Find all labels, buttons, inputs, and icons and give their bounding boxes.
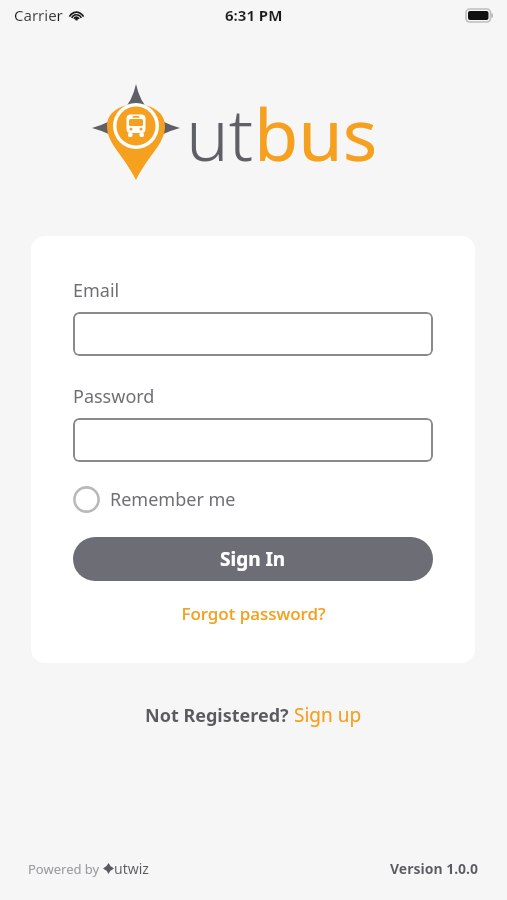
- staticText: Remember me: [110, 487, 236, 512]
- button[interactable]: Sign In: [73, 537, 433, 581]
- button[interactable]: [73, 312, 433, 356]
- staticText: ut: [186, 84, 254, 182]
- staticText: 6:31 PM: [225, 5, 283, 25]
- staticText: Powered by: [28, 860, 103, 878]
- button[interactable]: Remember me: [73, 484, 236, 515]
- button[interactable]: Forgot password?: [73, 602, 433, 625]
- button[interactable]: Sign up: [294, 702, 362, 728]
- staticText: bus: [254, 84, 378, 182]
- staticText: Version 1.0.0: [390, 859, 479, 878]
- staticText: Carrier: [14, 5, 63, 25]
- staticText: Password: [73, 384, 155, 409]
- staticText: Email: [73, 278, 120, 303]
- staticText: Sign up: [294, 702, 362, 728]
- staticText: utwiz: [114, 859, 149, 878]
- button[interactable]: [73, 418, 433, 462]
- staticText: Not Registered?: [145, 703, 294, 728]
- staticText: Sign In: [220, 546, 286, 572]
- staticText: Forgot password?: [181, 602, 326, 625]
